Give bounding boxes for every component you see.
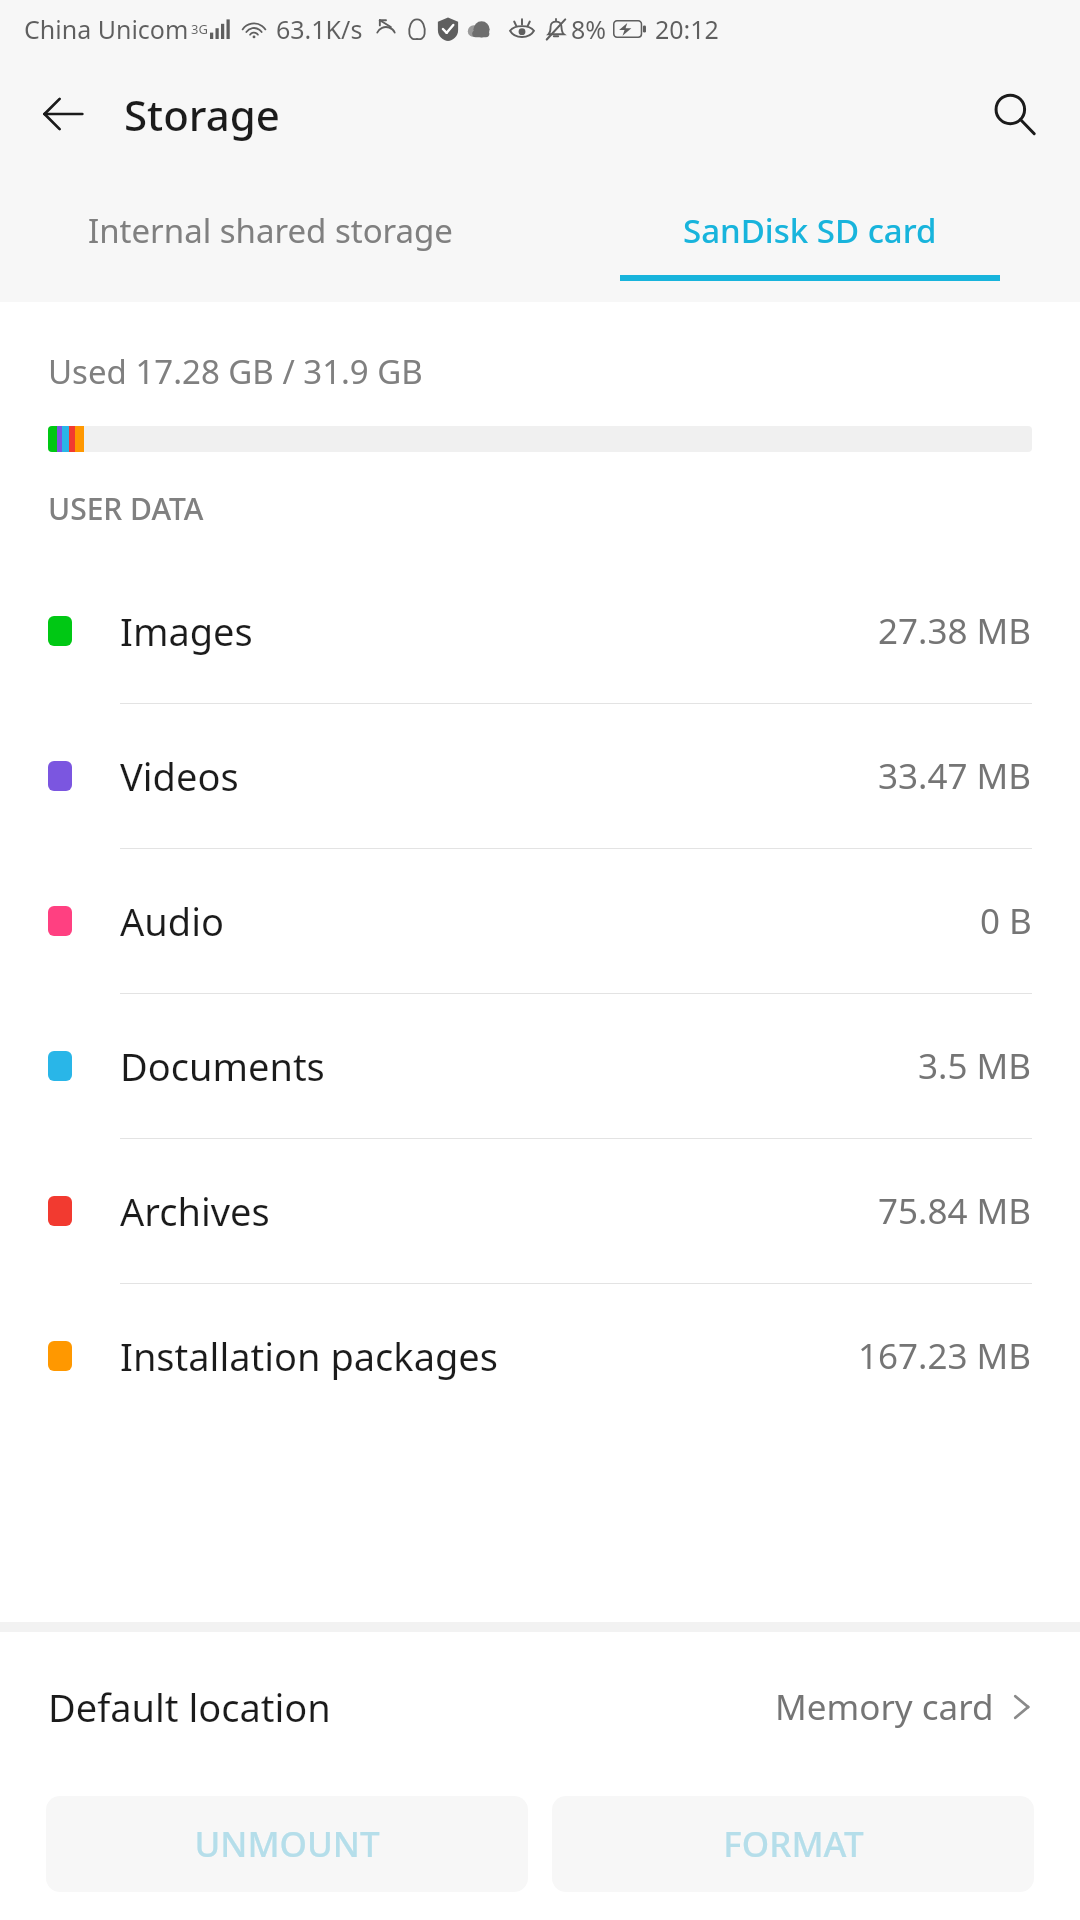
staticText: FORMAT [723, 1820, 864, 1868]
staticText: Default location [48, 1681, 331, 1733]
staticText: Archives [120, 1185, 270, 1237]
button[interactable]: Audio [0, 849, 1080, 994]
button[interactable]: Internal shared storage [0, 170, 540, 302]
button[interactable]: Documents [0, 994, 1080, 1139]
button[interactable]: UNMOUNT [46, 1796, 528, 1892]
staticText: 27.38 MB [878, 607, 1032, 655]
staticText: 20:12 [655, 12, 719, 46]
staticText: 3.5 MB [918, 1042, 1032, 1090]
staticText: Installation packages [120, 1330, 498, 1382]
staticText: Videos [120, 750, 239, 802]
staticText: USER DATA [48, 488, 204, 529]
button[interactable]: Default location [0, 1632, 1080, 1782]
staticText: 33.47 MB [878, 752, 1032, 800]
staticText: 167.23 MB [858, 1332, 1032, 1380]
staticText: 75.84 MB [878, 1187, 1032, 1235]
button[interactable]: Archives [0, 1139, 1080, 1284]
button[interactable]: Search [974, 74, 1054, 154]
staticText: 0 B [980, 897, 1032, 945]
staticText: Audio [120, 895, 224, 947]
staticText: SanDisk SD card [683, 208, 937, 253]
staticText: China Unicom [24, 12, 189, 46]
staticText: 3G [191, 20, 208, 38]
button[interactable]: Images [0, 559, 1080, 704]
button[interactable]: Back [26, 77, 100, 151]
staticText: Memory card [775, 1683, 994, 1731]
staticText: Documents [120, 1040, 325, 1092]
staticText: Images [120, 605, 253, 657]
staticText: Storage [124, 86, 280, 143]
button[interactable]: SanDisk SD card [540, 170, 1080, 302]
staticText: 63.1K/s [276, 12, 363, 46]
button[interactable]: Videos [0, 704, 1080, 849]
button[interactable]: FORMAT [552, 1796, 1034, 1892]
button[interactable]: Installation packages [0, 1284, 1080, 1428]
staticText: Internal shared storage [88, 208, 453, 253]
staticText: 8% [571, 12, 607, 46]
staticText: Used 17.28 GB / 31.9 GB [48, 349, 423, 394]
staticText: UNMOUNT [194, 1820, 380, 1868]
